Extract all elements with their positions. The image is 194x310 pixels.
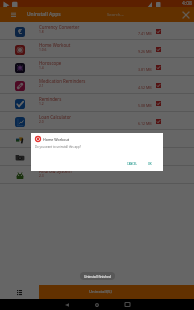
button[interactable]: Select Currency Converter xyxy=(156,29,161,34)
staticText: Do you want to uninstall this app? xyxy=(35,145,81,149)
button[interactable]: Select Home Workout xyxy=(156,47,161,52)
button[interactable]: Medication Reminders xyxy=(0,76,194,94)
button[interactable]: Loan Calculator xyxy=(0,112,194,130)
button[interactable]: Sort options xyxy=(0,285,39,299)
button[interactable]: Horoscope xyxy=(0,58,194,76)
button[interactable]: OK xyxy=(146,161,154,167)
button[interactable]: Select Horoscope xyxy=(156,65,161,70)
staticText: Search... xyxy=(107,12,124,18)
button[interactable]: Gallery xyxy=(0,130,194,148)
staticText: 4.52 MB xyxy=(138,85,152,90)
button[interactable]: Select Loan Calculator xyxy=(156,119,161,124)
button[interactable]: Clear search xyxy=(178,7,194,22)
button[interactable]: Select Reminders xyxy=(156,101,161,106)
staticText: Reminders xyxy=(39,96,62,102)
staticText: 1.8 xyxy=(39,29,44,33)
staticText: Horoscope xyxy=(39,60,62,66)
staticText: 2.0 xyxy=(39,119,44,123)
button[interactable]: Select Medication Reminders xyxy=(156,83,161,88)
staticText: 3.81 MB xyxy=(138,67,152,72)
button[interactable]: CANCEL xyxy=(125,161,139,167)
staticText: Home Workout xyxy=(39,42,71,48)
staticText: 2.3 xyxy=(39,173,44,177)
button[interactable]: Back xyxy=(52,299,82,310)
staticText: 6.12 MB xyxy=(138,121,152,126)
button[interactable]: Reminders xyxy=(0,94,194,112)
button[interactable]: Search... xyxy=(104,7,178,22)
staticText: Currency Converter xyxy=(39,24,80,30)
staticText: 5.08 MB xyxy=(138,103,152,108)
staticText: Android System xyxy=(39,168,72,174)
staticText: 2.4 xyxy=(39,137,44,141)
staticText: Uninstall finished xyxy=(84,274,111,278)
staticText: Home Workout xyxy=(43,137,70,142)
staticText: 1.2 xyxy=(39,101,44,105)
staticText: OK xyxy=(148,162,152,166)
staticText: Gallery xyxy=(39,132,54,138)
staticText: 1.4 xyxy=(39,65,44,69)
staticText: Loan Calculator xyxy=(39,114,72,120)
staticText: 4:08 xyxy=(182,0,192,7)
staticText: Medication Reminders xyxy=(39,78,86,84)
button[interactable]: Home Workout xyxy=(0,40,194,58)
staticText: € xyxy=(18,27,23,37)
button[interactable]: Camera xyxy=(0,148,194,166)
button[interactable]: Uninstall(5) xyxy=(39,285,194,299)
button[interactable]: Home xyxy=(82,299,112,310)
button[interactable]: Android System xyxy=(0,166,194,184)
button[interactable]: Recents xyxy=(112,299,142,310)
button[interactable]: € xyxy=(0,22,194,40)
staticText: Uninstall Apps xyxy=(27,11,61,18)
staticText: Uninstall(5) xyxy=(89,289,112,295)
staticText: 7.41 MB xyxy=(138,31,152,36)
staticText: 2.1 xyxy=(39,83,44,87)
staticText: 9.26 MB xyxy=(138,49,152,54)
button[interactable]: Menu xyxy=(0,7,27,22)
staticText: 1.0.6 xyxy=(39,47,47,51)
staticText: CANCEL xyxy=(127,162,137,166)
